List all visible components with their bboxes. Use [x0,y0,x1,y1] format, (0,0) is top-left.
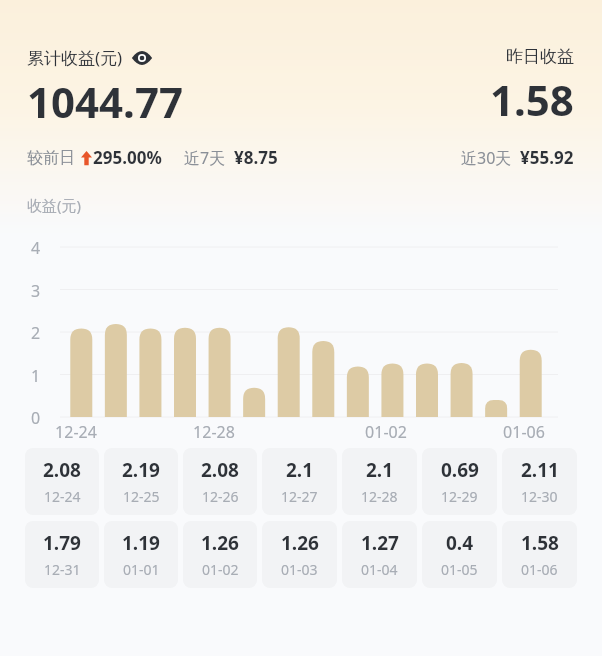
staticText: 1 [31,365,41,387]
staticText: 12-28 [182,421,246,443]
staticText: 1.58 [521,530,559,556]
staticText: 较前日 [27,148,75,168]
staticText: 01-02 [354,421,418,443]
staticText: 2.19 [122,457,160,483]
button[interactable]: 2.19 [104,448,178,515]
staticText: 近30天 [461,147,512,169]
staticText: 1.26 [201,530,239,556]
staticText: 2 [31,322,41,344]
staticText: 2.08 [201,457,239,483]
button[interactable]: 2.1 [342,448,417,515]
staticText: 1.27 [361,530,399,556]
staticText: 12-30 [521,487,558,506]
staticText: 0 [31,407,41,429]
staticText: 12-24 [44,487,81,506]
staticText: 0.4 [446,530,474,556]
button[interactable]: 隐藏收益 [131,47,153,69]
staticText: 01-05 [441,560,478,579]
button[interactable]: 1.26 [262,521,337,588]
staticText: 2.08 [43,457,81,483]
staticText: 0.69 [441,457,479,483]
staticText: 12-26 [202,487,239,506]
staticText: 昨日收益 [506,46,574,67]
staticText: 01-06 [521,560,558,579]
staticText: 累计收益(元) [27,46,123,69]
staticText: 01-02 [202,560,239,579]
button[interactable]: 2.11 [502,448,577,515]
staticText: 1044.77 [27,73,183,130]
staticText: ¥8.75 [234,146,278,169]
staticText: 12-24 [44,421,108,443]
button[interactable]: 1.26 [183,521,257,588]
staticText: 12-27 [281,487,318,506]
staticText: 近7天 [184,147,226,169]
staticText: 1.26 [281,530,319,556]
staticText: 12-25 [123,487,160,506]
staticText: 2.1 [286,457,314,483]
staticText: 1.19 [122,530,160,556]
button[interactable]: 1.58 [502,521,577,588]
button[interactable]: 0.4 [422,521,497,588]
staticText: 01-06 [492,421,556,443]
staticText: 2.11 [521,457,559,483]
staticText: 3 [31,280,41,302]
button[interactable]: 2.08 [183,448,257,515]
staticText: 12-28 [361,487,398,506]
staticText: 01-01 [123,560,160,579]
button[interactable]: 1.19 [104,521,178,588]
button[interactable]: 近7天 [184,146,278,169]
button[interactable]: 近30天 [461,146,574,169]
button[interactable]: 1.27 [342,521,417,588]
staticText: 4 [31,237,41,259]
staticText: 2.1 [366,457,394,483]
button[interactable]: 较前日 [27,146,162,169]
staticText: 1.79 [43,530,81,556]
staticText: 1.58 [490,71,574,128]
button[interactable]: 2.08 [25,448,99,515]
staticText: 12-29 [441,487,478,506]
staticText: 01-03 [281,560,318,579]
button[interactable]: 0.69 [422,448,497,515]
staticText: 01-04 [361,560,398,579]
staticText: 收益(元) [27,195,82,215]
button[interactable]: 2.1 [262,448,337,515]
staticText: 12-31 [44,560,81,579]
button[interactable]: 1.79 [25,521,99,588]
staticText: 295.00% [93,146,162,169]
staticText: ¥55.92 [520,146,574,169]
